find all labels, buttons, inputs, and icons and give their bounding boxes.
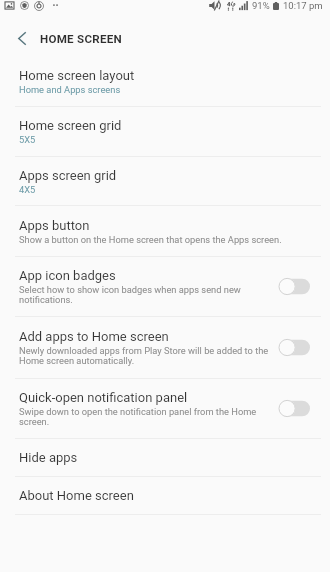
- staticText: Hide apps: [19, 450, 78, 465]
- button[interactable]: Home screen grid: [0, 107, 330, 156]
- staticText: Home screen layout: [19, 68, 135, 83]
- staticText: Apps button: [19, 218, 90, 233]
- button[interactable]: About Home screen: [0, 477, 330, 514]
- button[interactable]: App icon badges: [0, 257, 330, 316]
- staticText: Add apps to Home screen: [19, 329, 169, 344]
- staticText: 4X5: [19, 184, 36, 195]
- staticText: Home screen grid: [19, 118, 122, 133]
- button[interactable]: Hide apps: [0, 439, 330, 476]
- staticText: 5X5: [19, 134, 36, 145]
- staticText: 10:17 pm: [283, 0, 323, 11]
- staticText: Apps screen grid: [19, 168, 117, 183]
- staticText: HOME SCREEN: [40, 32, 122, 46]
- button[interactable]: Add apps to Home screen: [0, 317, 330, 378]
- staticText: App icon badges: [19, 268, 116, 283]
- staticText: About Home screen: [19, 488, 134, 503]
- button[interactable]: Toggle off: [277, 338, 310, 357]
- staticText: Show a button on the Home screen that op…: [19, 234, 282, 245]
- button[interactable]: Back: [0, 21, 44, 56]
- staticText: Select how to show icon badges when apps…: [19, 284, 269, 306]
- staticText: Swipe down to open the notification pane…: [19, 406, 269, 428]
- staticText: 91%: [252, 0, 270, 11]
- button[interactable]: Home screen layout: [0, 57, 330, 106]
- staticText: Home and Apps screens: [19, 84, 121, 95]
- button[interactable]: Quick-open notification panel: [0, 379, 330, 438]
- button[interactable]: Toggle off: [277, 277, 310, 296]
- staticText: Newly downloaded apps from Play Store wi…: [19, 345, 269, 367]
- button[interactable]: Apps button: [0, 206, 330, 256]
- button[interactable]: Apps screen grid: [0, 157, 330, 205]
- button[interactable]: Toggle off: [277, 399, 310, 418]
- staticText: Quick-open notification panel: [19, 390, 188, 405]
